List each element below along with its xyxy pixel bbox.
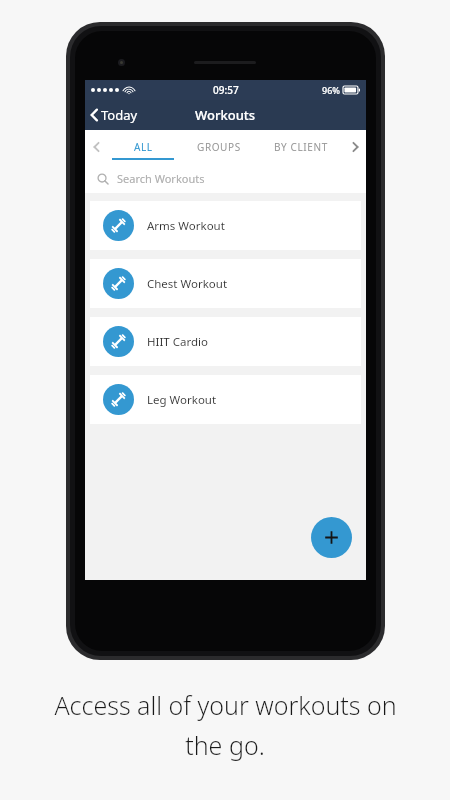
button[interactable]: Previous tabs: [85, 130, 107, 163]
button[interactable]: ALL: [107, 130, 179, 163]
staticText: ALL: [134, 140, 153, 154]
staticText: Today: [101, 106, 138, 124]
staticText: the go.: [185, 728, 265, 762]
button[interactable]: GROUPS: [179, 130, 258, 163]
button[interactable]: Leg Workout: [90, 375, 361, 424]
staticText: Arms Workout: [147, 218, 225, 234]
button[interactable]: Chest Workout: [90, 259, 361, 308]
staticText: Access all of your workouts on: [54, 688, 397, 722]
staticText: Leg Workout: [147, 392, 217, 408]
button[interactable]: HIIT Cardio: [90, 317, 361, 366]
staticText: GROUPS: [197, 140, 241, 154]
staticText: HIIT Cardio: [147, 334, 208, 350]
button[interactable]: Search Workouts: [85, 163, 366, 193]
button[interactable]: Today: [85, 100, 144, 130]
staticText: 96%: [322, 84, 340, 96]
staticText: BY CLIENT: [274, 140, 328, 154]
staticText: Workouts: [195, 106, 256, 124]
button[interactable]: Arms Workout: [90, 201, 361, 250]
button[interactable]: Next tabs: [344, 130, 366, 163]
button[interactable]: Add workout: [311, 517, 352, 558]
staticText: Search Workouts: [117, 171, 205, 186]
staticText: Chest Workout: [147, 276, 228, 292]
button[interactable]: BY CLIENT: [258, 130, 344, 163]
staticText: 09:57: [213, 83, 239, 97]
